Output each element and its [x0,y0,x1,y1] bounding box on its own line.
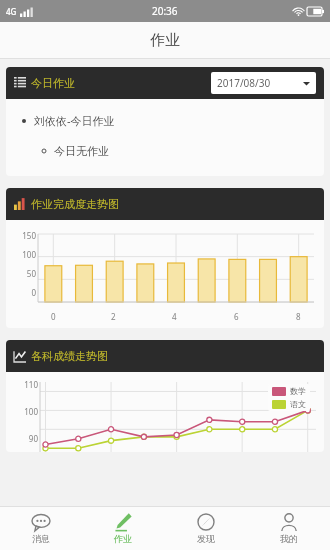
staticText: 4G [6,6,17,17]
staticText: 20:36 [152,4,178,18]
staticText: 100 [12,406,38,417]
button[interactable]: 作业 [82,507,164,550]
staticText: 我的 [280,533,298,544]
button[interactable]: 2017/08/30 [217,72,310,94]
staticText: 110 [12,379,38,390]
staticText: 刘依依-今日作业 [34,113,115,128]
staticText: 90 [12,433,38,444]
button[interactable]: 我的 [247,507,330,550]
staticText: 发现 [197,533,215,544]
staticText: 各科成绩走势图 [31,349,108,363]
button[interactable]: 消息 [0,507,82,550]
button[interactable]: 发现 [164,507,247,550]
staticText: 数学 [290,386,306,396]
staticText: 作业 [114,533,132,544]
staticText: 100 [12,249,36,260]
staticText: 8 [296,311,301,322]
button[interactable]: 各科成绩走势图 [14,340,316,372]
staticText: 0 [51,311,56,322]
staticText: 作业完成度走势图 [31,197,119,211]
staticText: 今日作业 [31,76,75,90]
staticText: 作业 [150,31,180,50]
staticText: 50 [12,268,36,279]
button[interactable]: 今日作业 [14,67,316,99]
staticText: 4 [172,311,177,322]
staticText: 150 [12,230,36,241]
button[interactable]: 作业完成度走势图 [14,188,316,220]
staticText: 消息 [32,533,50,544]
staticText: 2 [111,311,116,322]
staticText: 今日无作业 [54,144,109,158]
staticText: 0 [12,287,36,298]
staticText: 2017/08/30 [217,76,271,90]
staticText: 语文 [290,399,306,409]
staticText: 6 [234,311,239,322]
